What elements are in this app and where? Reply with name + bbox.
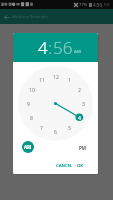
staticText: 2 — [78, 86, 81, 93]
staticText: 1 — [68, 76, 71, 83]
staticText: Medicine Reminder — [12, 14, 49, 19]
staticText: CANCEL — [56, 163, 73, 169]
staticText: 56 — [53, 36, 73, 59]
staticText: AM — [24, 144, 32, 150]
button[interactable]: AM — [22, 141, 34, 153]
staticText: : — [48, 36, 53, 59]
staticText: 10 — [29, 86, 35, 93]
staticText: 4 — [38, 36, 48, 59]
staticText: 4 — [78, 114, 81, 121]
staticText: 12 — [53, 73, 59, 80]
staticText: 11 — [39, 76, 45, 83]
staticText: PM — [104, 2, 110, 7]
staticText: 3 — [82, 100, 85, 107]
staticText: 77% — [79, 2, 88, 8]
staticText: PM — [79, 145, 87, 151]
button[interactable]: OK — [75, 160, 86, 172]
staticText: 5 — [68, 124, 71, 131]
staticText: 8 — [30, 114, 33, 121]
staticText: 7 — [40, 124, 43, 131]
button[interactable]: CANCEL — [56, 160, 73, 172]
staticText: AM — [74, 49, 81, 55]
staticText: 6 — [54, 128, 57, 135]
button[interactable]: 4 — [38, 36, 48, 59]
button[interactable]: Back — [2, 13, 10, 21]
staticText: OK — [77, 163, 84, 169]
staticText: 9 — [27, 100, 30, 107]
button[interactable]: PM — [76, 141, 89, 154]
button[interactable]: 56 — [53, 36, 73, 59]
staticText: 4:56 — [93, 2, 103, 8]
